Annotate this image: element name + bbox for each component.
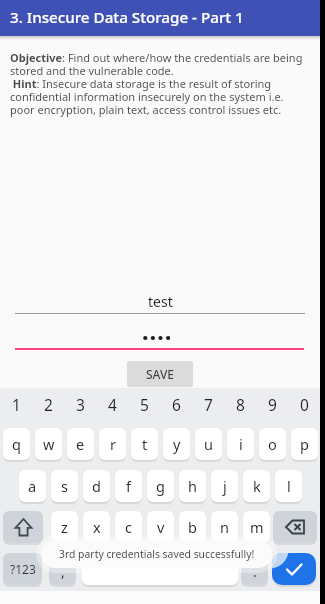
staticText: k bbox=[253, 476, 261, 496]
button[interactable]: q bbox=[3, 428, 30, 460]
staticText: n bbox=[220, 517, 229, 537]
staticText: 5 bbox=[140, 394, 149, 415]
button[interactable] bbox=[3, 511, 43, 543]
staticText: 2 bbox=[44, 394, 53, 415]
staticText: m bbox=[250, 517, 264, 537]
button[interactable]: f bbox=[115, 470, 142, 502]
staticText: p bbox=[300, 434, 309, 454]
staticText: j bbox=[223, 476, 227, 496]
staticText: b bbox=[188, 517, 197, 537]
button[interactable]: 7 bbox=[192, 393, 224, 415]
button[interactable]: j bbox=[211, 470, 238, 502]
button[interactable]: 2 bbox=[32, 393, 64, 415]
staticText: test bbox=[148, 292, 173, 311]
button[interactable]: w bbox=[35, 428, 62, 460]
button[interactable]: a bbox=[19, 470, 46, 502]
staticText: 8 bbox=[236, 394, 245, 415]
button[interactable]: k bbox=[243, 470, 270, 502]
staticText: u bbox=[204, 434, 213, 454]
button[interactable] bbox=[82, 553, 238, 585]
staticText: i bbox=[239, 434, 243, 454]
button[interactable]: n bbox=[211, 511, 238, 543]
button[interactable]: s bbox=[51, 470, 78, 502]
staticText: , bbox=[61, 562, 65, 581]
staticText: 4 bbox=[108, 394, 117, 415]
button[interactable] bbox=[272, 553, 316, 585]
staticText: h bbox=[188, 476, 197, 496]
button[interactable]: i bbox=[227, 428, 254, 460]
staticText: Objective: Find out where/how the creden… bbox=[10, 50, 318, 118]
button[interactable]: , bbox=[49, 553, 76, 585]
button[interactable]: . bbox=[241, 553, 268, 585]
staticText: ?123 bbox=[10, 561, 36, 577]
staticText: q bbox=[12, 434, 21, 454]
staticText: 3 bbox=[76, 394, 85, 415]
button[interactable]: d bbox=[83, 470, 110, 502]
staticText: 1 bbox=[12, 394, 21, 415]
staticText: a bbox=[28, 476, 37, 496]
button[interactable]: e bbox=[67, 428, 94, 460]
button[interactable]: y bbox=[163, 428, 190, 460]
button[interactable]: t bbox=[131, 428, 158, 460]
staticText: o bbox=[268, 434, 277, 454]
staticText: . bbox=[253, 562, 257, 581]
staticText: 6 bbox=[172, 394, 181, 415]
staticText: 7 bbox=[204, 394, 213, 415]
button[interactable]: 3 bbox=[64, 393, 96, 415]
staticText: 3rd party credentials saved successfully… bbox=[59, 547, 255, 561]
button[interactable]: ?123 bbox=[3, 553, 42, 585]
button[interactable]: c bbox=[115, 511, 142, 543]
button[interactable]: b bbox=[179, 511, 206, 543]
button[interactable]: l bbox=[275, 470, 302, 502]
button[interactable]: r bbox=[99, 428, 126, 460]
button[interactable]: 5 bbox=[128, 393, 160, 415]
staticText: 0 bbox=[300, 394, 309, 415]
button[interactable]: 4 bbox=[96, 393, 128, 415]
button[interactable]: x bbox=[83, 511, 110, 543]
staticText: z bbox=[61, 517, 68, 537]
button[interactable]: o bbox=[259, 428, 286, 460]
staticText: s bbox=[61, 476, 68, 496]
staticText: 9 bbox=[268, 394, 277, 415]
button[interactable]: u bbox=[195, 428, 222, 460]
button[interactable]: g bbox=[147, 470, 174, 502]
button[interactable]: 3. Insecure Data Storage - Part 1 bbox=[0, 0, 325, 36]
staticText: 3. Insecure Data Storage - Part 1 bbox=[10, 7, 244, 28]
staticText: l bbox=[287, 476, 291, 496]
button[interactable]: 8 bbox=[224, 393, 256, 415]
staticText: y bbox=[173, 434, 181, 454]
staticText: x bbox=[93, 517, 101, 537]
staticText: t bbox=[142, 434, 148, 454]
button[interactable]: m bbox=[243, 511, 270, 543]
button[interactable] bbox=[273, 511, 317, 543]
button[interactable]: 9 bbox=[256, 393, 288, 415]
button[interactable]: 0 bbox=[288, 393, 320, 415]
staticText: e bbox=[76, 434, 85, 454]
staticText: v bbox=[157, 517, 165, 537]
button[interactable]: z bbox=[51, 511, 78, 543]
staticText: SAVE bbox=[146, 366, 175, 382]
button[interactable]: h bbox=[179, 470, 206, 502]
button[interactable]: 6 bbox=[160, 393, 192, 415]
staticText: d bbox=[92, 476, 101, 496]
staticText: g bbox=[156, 476, 165, 496]
staticText: f bbox=[126, 476, 131, 496]
staticText: w bbox=[43, 434, 55, 454]
button[interactable]: p bbox=[291, 428, 318, 460]
button[interactable]: v bbox=[147, 511, 174, 543]
staticText: r bbox=[110, 434, 116, 454]
button[interactable]: SAVE bbox=[127, 361, 193, 387]
staticText: c bbox=[125, 517, 132, 537]
button[interactable]: 1 bbox=[0, 393, 32, 415]
